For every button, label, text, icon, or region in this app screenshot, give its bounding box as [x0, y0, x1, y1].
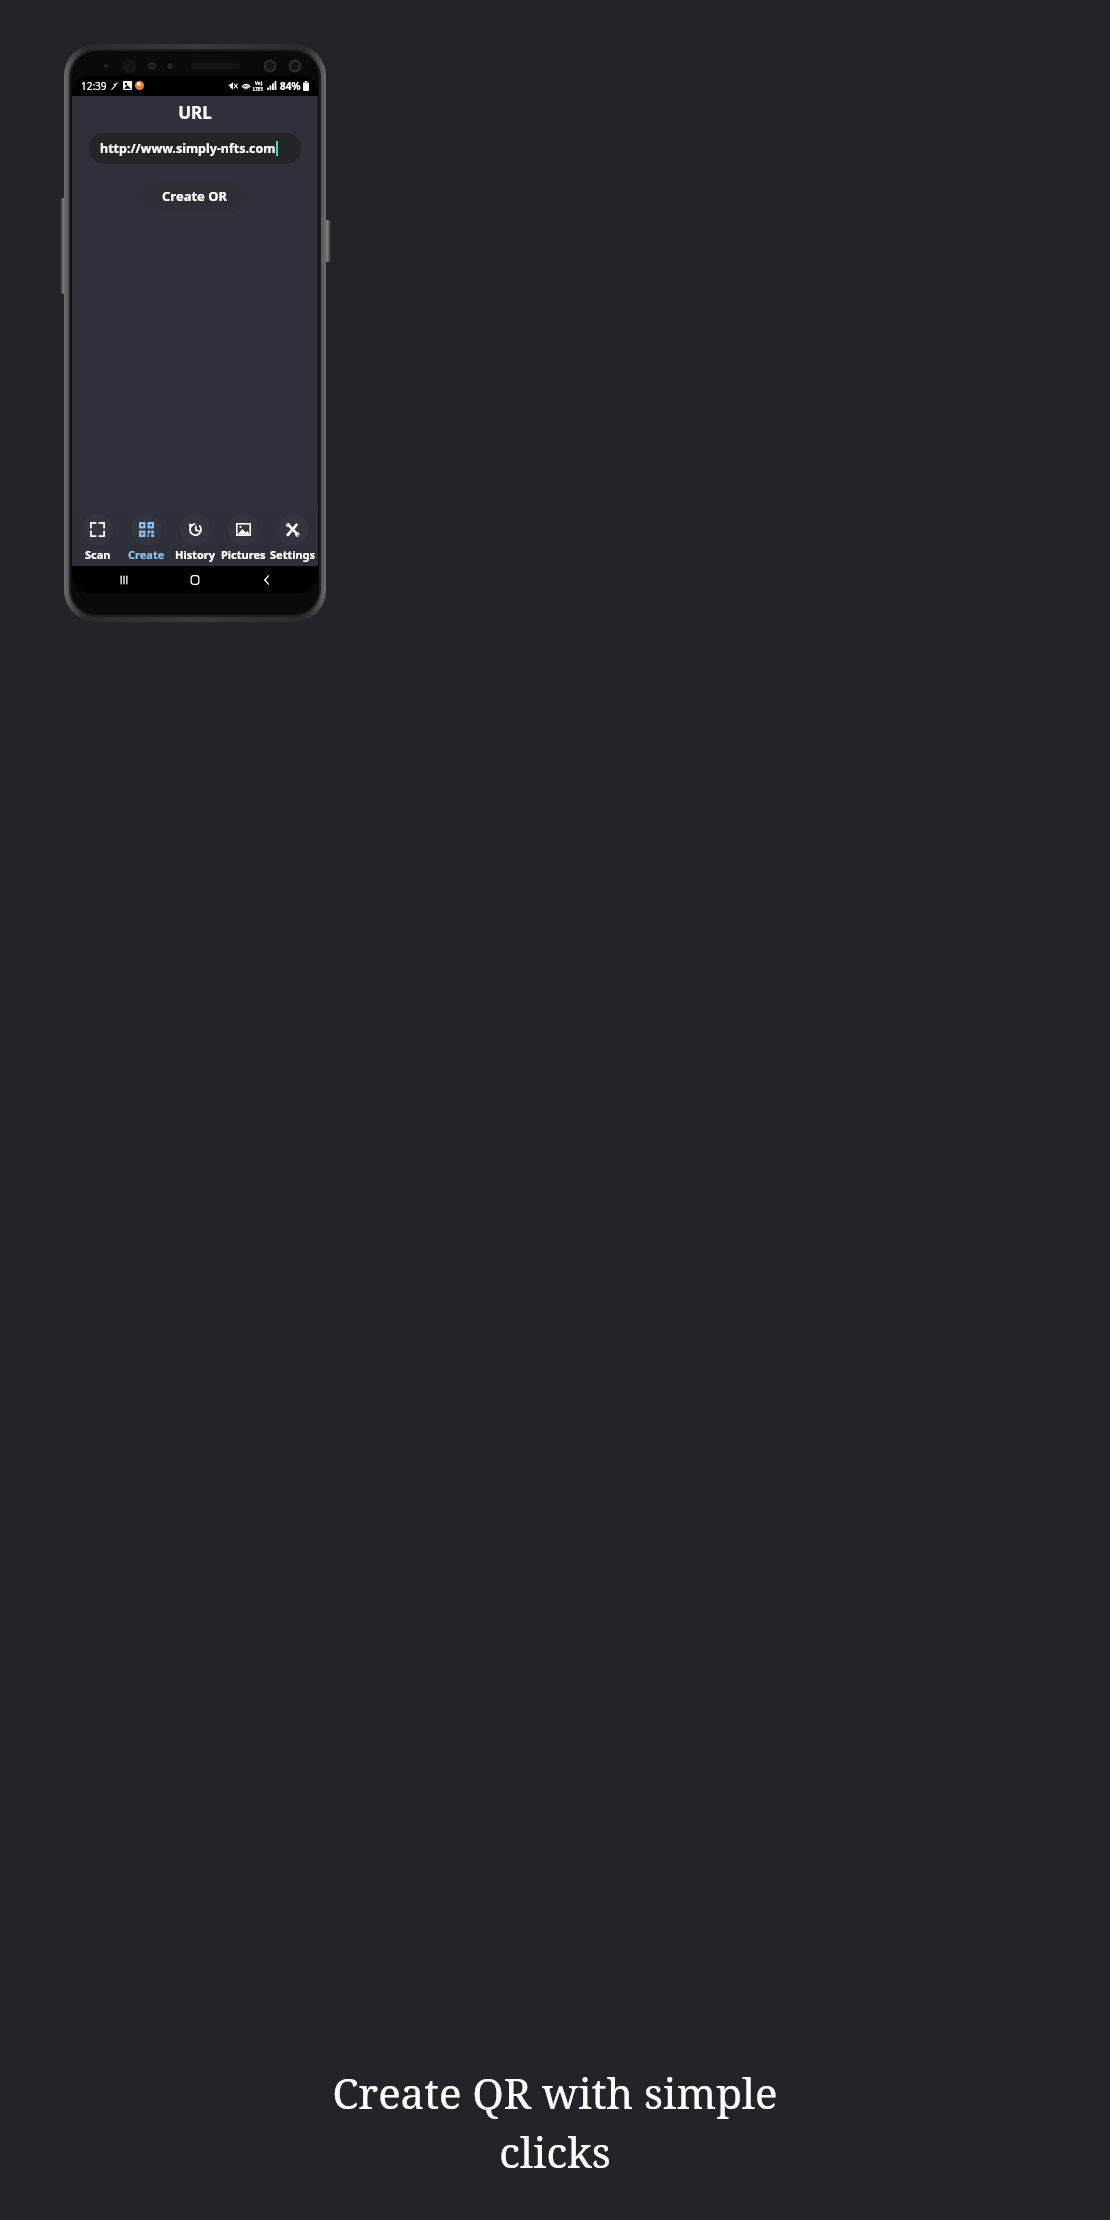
button[interactable]: Recents: [104, 566, 144, 593]
button[interactable]: Scan: [74, 509, 121, 566]
staticText: Scan: [85, 547, 111, 562]
staticText: Create OR: [162, 187, 228, 205]
button[interactable]: Settings: [269, 509, 316, 566]
staticText: LTE1: [253, 86, 264, 92]
staticText: Settings: [270, 547, 316, 562]
button[interactable]: Create: [123, 509, 170, 566]
button[interactable]: Back: [247, 566, 287, 593]
button[interactable]: Pictures: [220, 509, 267, 566]
staticText: clicks: [12, 2123, 1098, 2180]
staticText: Pictures: [221, 547, 266, 562]
button[interactable]: Home: [175, 566, 215, 593]
staticText: Create: [128, 547, 165, 562]
staticText: 12:39: [81, 79, 107, 93]
button[interactable]: Create OR: [143, 179, 247, 213]
staticText: 84%: [280, 79, 301, 93]
staticText: Vo): [255, 80, 263, 86]
staticText: Create QR with simple: [12, 2064, 1098, 2121]
staticText: URL: [72, 101, 318, 124]
button[interactable]: http://www.simply-nfts.com: [89, 133, 301, 164]
staticText: http://www.simply-nfts.com: [100, 140, 276, 157]
staticText: History: [175, 547, 216, 562]
button[interactable]: History: [172, 509, 219, 566]
